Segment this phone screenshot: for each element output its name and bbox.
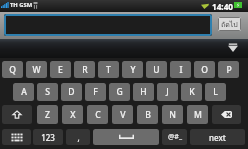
staticText: K (189, 86, 195, 98)
button[interactable]: , (66, 129, 90, 145)
button[interactable]: E (50, 61, 71, 78)
staticText: E (58, 64, 63, 76)
button[interactable]: O (194, 61, 215, 78)
staticText: next (209, 132, 226, 143)
staticText: P (226, 64, 232, 76)
button[interactable]: B (137, 105, 158, 124)
staticText: F (93, 86, 98, 98)
button[interactable]: V (112, 105, 133, 124)
button[interactable]: P (218, 61, 239, 78)
button[interactable]: H (133, 83, 154, 101)
button[interactable]: Backspace (212, 105, 241, 124)
button[interactable]: J (157, 83, 178, 101)
button[interactable]: Space (93, 129, 159, 145)
staticText: M (194, 109, 202, 121)
button[interactable]: D (61, 83, 82, 101)
button[interactable]: K (181, 83, 202, 101)
staticText: W (32, 64, 41, 76)
staticText: Y (130, 64, 136, 76)
button[interactable]: T (98, 61, 119, 78)
button[interactable]: Shift (2, 105, 32, 124)
staticText: X (70, 109, 76, 121)
staticText: V (120, 109, 126, 121)
staticText: H (140, 86, 147, 98)
staticText: G (116, 86, 123, 98)
button[interactable]: L (205, 83, 226, 101)
button[interactable]: X (62, 105, 83, 124)
button[interactable]: C (87, 105, 108, 124)
staticText: U (153, 64, 160, 76)
button[interactable]: Z (37, 105, 58, 124)
button[interactable]: 123 (33, 129, 63, 145)
button[interactable]: M (187, 105, 208, 124)
button[interactable]: I (170, 61, 191, 78)
button[interactable]: Keyboard layout (2, 129, 31, 145)
staticText: Q (9, 64, 16, 76)
button[interactable]: U (146, 61, 167, 78)
button[interactable]: @#_ (162, 129, 187, 145)
button[interactable]: Y (122, 61, 143, 78)
button[interactable]: G (109, 83, 130, 101)
button[interactable]: R (74, 61, 95, 78)
staticText: I (179, 64, 183, 76)
staticText: Z (45, 109, 50, 121)
staticText: 14:40 (212, 1, 234, 12)
button[interactable]: W (26, 61, 47, 78)
staticText: A (21, 86, 27, 98)
button[interactable]: N (162, 105, 183, 124)
staticText: TH GSM (10, 1, 33, 9)
staticText: R (82, 64, 88, 76)
staticText: J (166, 86, 169, 98)
staticText: ถัดไป (221, 19, 238, 30)
staticText: , (77, 132, 80, 143)
staticText: @#_ (168, 132, 182, 142)
button[interactable]: ถัดไป (218, 17, 241, 31)
button[interactable]: Q (2, 61, 23, 78)
staticText: S (45, 86, 50, 98)
staticText: O (201, 64, 208, 76)
button[interactable]: Hide keyboard (225, 40, 241, 55)
staticText: T (106, 64, 111, 76)
staticText: B (145, 109, 151, 121)
staticText: C (95, 109, 101, 121)
button[interactable]: S (37, 83, 58, 101)
button[interactable]: F (85, 83, 106, 101)
staticText: L (213, 86, 218, 98)
button[interactable]: next (190, 129, 245, 145)
staticText: 123 (41, 132, 55, 143)
staticText: N (169, 109, 176, 121)
staticText: D (68, 86, 75, 98)
button[interactable]: A (13, 83, 34, 101)
button[interactable] (4, 14, 212, 36)
